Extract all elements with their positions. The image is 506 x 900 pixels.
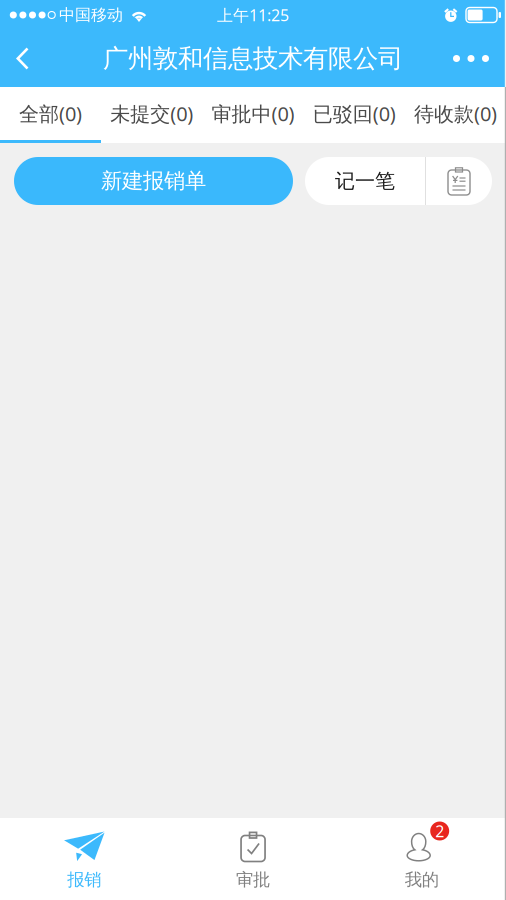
staticText: 审批中(0) (211, 100, 294, 127)
staticText: 已驳回(0) (313, 100, 396, 127)
staticText: 新建报销单 (101, 168, 206, 194)
staticText: 报销 (67, 869, 101, 890)
button[interactable]: 未提交(0) (101, 87, 202, 140)
button[interactable]: 报销 (0, 818, 169, 900)
staticText: 上午11:25 (217, 4, 289, 26)
staticText: 记一笔 (335, 169, 395, 193)
button[interactable]: 新建报销单 (14, 157, 293, 205)
button[interactable]: 记一笔 (305, 157, 425, 205)
button[interactable]: 待收款(0) (405, 87, 506, 140)
button[interactable]: Receipt book (426, 157, 492, 205)
staticText: 广州敦和信息技术有限公司 (103, 43, 403, 74)
staticText: 我的 (405, 869, 439, 890)
button[interactable]: Back (0, 30, 62, 87)
button[interactable]: 全部(0) (0, 87, 101, 140)
staticText: 未提交(0) (110, 100, 193, 127)
staticText: 中国移动 (59, 5, 123, 25)
button[interactable]: 2 (337, 818, 506, 900)
staticText: 全部(0) (19, 100, 82, 127)
button[interactable]: More (436, 30, 506, 87)
button[interactable]: 已驳回(0) (304, 87, 405, 140)
button[interactable]: 审批 (169, 818, 337, 900)
button[interactable]: 审批中(0) (202, 87, 304, 140)
staticText: 2 (435, 820, 444, 842)
staticText: 待收款(0) (414, 100, 497, 127)
staticText: 审批 (236, 869, 270, 890)
